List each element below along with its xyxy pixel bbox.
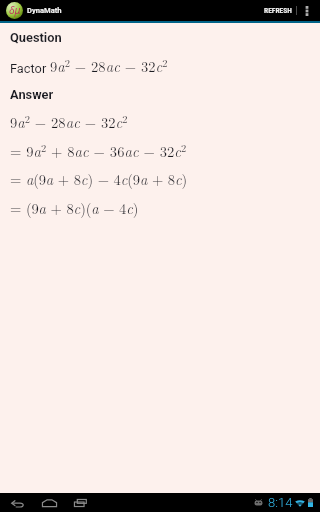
staticText: Question (10, 30, 62, 45)
staticText: = 9a2 + 8ac − 36ac − 32c2 (10, 140, 187, 161)
staticText: = a(9a + 8c) − 4c(9a + 8c) (10, 169, 187, 190)
button[interactable]: Recent apps (73, 495, 89, 511)
button[interactable]: More options (296, 0, 318, 21)
staticText: = (9a + 8c)(a − 4c) (10, 198, 139, 219)
button[interactable]: Home (41, 495, 57, 511)
staticText: 8:14 (268, 495, 293, 510)
staticText: DynaMath (27, 6, 62, 15)
button[interactable]: Status (0, 493, 320, 512)
staticText: 9a2 − 28ac − 32c2 (50, 55, 168, 76)
staticText: 9a2 − 28ac − 32c2 (10, 111, 128, 132)
button[interactable]: Back (9, 495, 25, 511)
button[interactable]: δμ (0, 0, 70, 21)
staticText: Answer (10, 87, 54, 102)
staticText: Factor (10, 61, 47, 76)
staticText: REFRESH (264, 6, 292, 15)
staticText: δμ (9, 3, 21, 17)
button[interactable]: REFRESH (260, 0, 296, 21)
